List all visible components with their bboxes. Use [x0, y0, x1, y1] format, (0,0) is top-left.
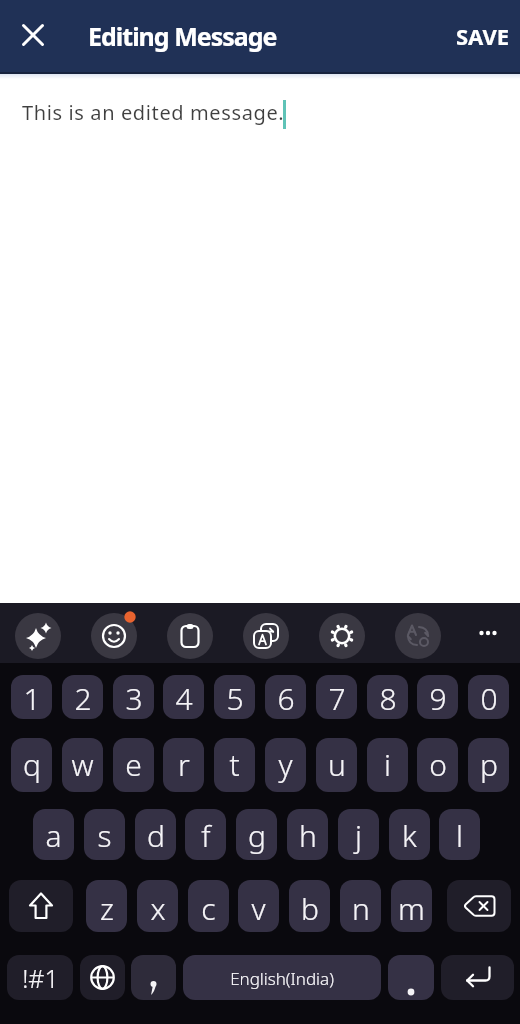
staticText: y — [278, 744, 293, 785]
button[interactable]: x — [137, 880, 178, 932]
button[interactable]: w — [62, 738, 103, 792]
button[interactable] — [91, 613, 137, 659]
staticText: 3 — [125, 678, 143, 719]
button[interactable]: v — [238, 880, 279, 932]
button[interactable]: 9 — [417, 675, 458, 719]
button[interactable] — [319, 613, 365, 659]
staticText: 9 — [429, 678, 447, 719]
button[interactable] — [131, 955, 176, 1000]
button[interactable] — [11, 13, 55, 57]
staticText: 4 — [175, 678, 193, 719]
staticText: e — [125, 744, 142, 785]
button[interactable]: n — [340, 880, 381, 932]
staticText: h — [299, 815, 317, 856]
button[interactable]: b — [289, 880, 330, 932]
staticText: 2 — [74, 678, 92, 719]
staticText: x — [150, 888, 166, 929]
button[interactable] — [80, 955, 125, 1000]
button[interactable]: o — [417, 738, 458, 792]
staticText: 5 — [226, 678, 244, 719]
button[interactable]: 1 — [11, 675, 52, 719]
staticText: 0 — [480, 678, 498, 719]
staticText: p — [480, 744, 498, 785]
button[interactable]: 3 — [113, 675, 154, 719]
button[interactable]: t — [214, 738, 255, 792]
button[interactable] — [388, 955, 434, 1000]
staticText: l — [456, 815, 463, 856]
button[interactable]: p — [468, 738, 509, 792]
button[interactable]: k — [389, 809, 430, 860]
button[interactable]: 5 — [214, 675, 255, 719]
button[interactable] — [395, 613, 441, 659]
staticText: f — [201, 815, 211, 856]
staticText: w — [71, 744, 94, 785]
button[interactable]: 6 — [265, 675, 306, 719]
button[interactable]: m — [391, 880, 432, 932]
button[interactable]: e — [113, 738, 154, 792]
staticText: v — [251, 888, 266, 929]
button[interactable]: 4 — [163, 675, 204, 719]
button[interactable]: 7 — [316, 675, 357, 719]
button[interactable]: English(India) — [183, 955, 381, 1000]
staticText: Editing Message — [88, 19, 277, 53]
button[interactable]: 0 — [468, 675, 509, 719]
button[interactable] — [466, 610, 510, 656]
button[interactable] — [9, 880, 73, 932]
button[interactable]: h — [287, 809, 328, 860]
button[interactable]: s — [84, 809, 125, 860]
button[interactable]: j — [338, 809, 379, 860]
staticText: SAVE — [456, 21, 510, 51]
button[interactable]: l — [439, 809, 480, 860]
staticText: English(India) — [230, 967, 334, 990]
staticText: g — [248, 815, 266, 856]
staticText: 7 — [328, 678, 346, 719]
staticText: d — [147, 815, 165, 856]
staticText: 1 — [23, 678, 41, 719]
staticText: z — [100, 888, 114, 929]
button[interactable]: q — [11, 738, 52, 792]
staticText: j — [355, 815, 362, 856]
button[interactable]: SAVE — [445, 0, 520, 72]
staticText: b — [301, 888, 319, 929]
button[interactable]: 2 — [62, 675, 103, 719]
staticText: 6 — [277, 678, 295, 719]
staticText: r — [178, 744, 190, 785]
staticText: t — [229, 744, 240, 785]
staticText: 8 — [379, 678, 397, 719]
button[interactable] — [441, 955, 514, 1000]
staticText: m — [398, 888, 425, 929]
button[interactable]: i — [367, 738, 408, 792]
button[interactable]: f — [185, 809, 226, 860]
button[interactable] — [167, 613, 213, 659]
staticText: !#1 — [22, 961, 59, 995]
button[interactable]: c — [188, 880, 229, 932]
button[interactable]: g — [236, 809, 277, 860]
staticText: k — [402, 815, 417, 856]
staticText: n — [352, 888, 370, 929]
button[interactable]: !#1 — [7, 955, 73, 1000]
button[interactable]: 8 — [367, 675, 408, 719]
button[interactable]: z — [86, 880, 127, 932]
button[interactable] — [15, 613, 61, 659]
button[interactable]: d — [135, 809, 176, 860]
button[interactable]: r — [163, 738, 204, 792]
staticText: s — [97, 815, 112, 856]
button[interactable] — [243, 613, 289, 659]
staticText: c — [201, 888, 216, 929]
staticText: i — [384, 744, 391, 785]
staticText: u — [328, 744, 346, 785]
staticText: q — [23, 744, 41, 785]
button[interactable]: y — [265, 738, 306, 792]
button[interactable] — [447, 880, 511, 932]
staticText: o — [429, 744, 447, 785]
button[interactable]: a — [33, 809, 74, 860]
staticText: a — [45, 815, 62, 856]
staticText: This is an edited message. — [22, 99, 285, 126]
button[interactable]: u — [316, 738, 357, 792]
